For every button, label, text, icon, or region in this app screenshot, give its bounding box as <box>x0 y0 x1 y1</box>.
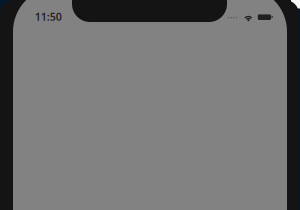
staticText: 11:50 <box>35 9 62 24</box>
